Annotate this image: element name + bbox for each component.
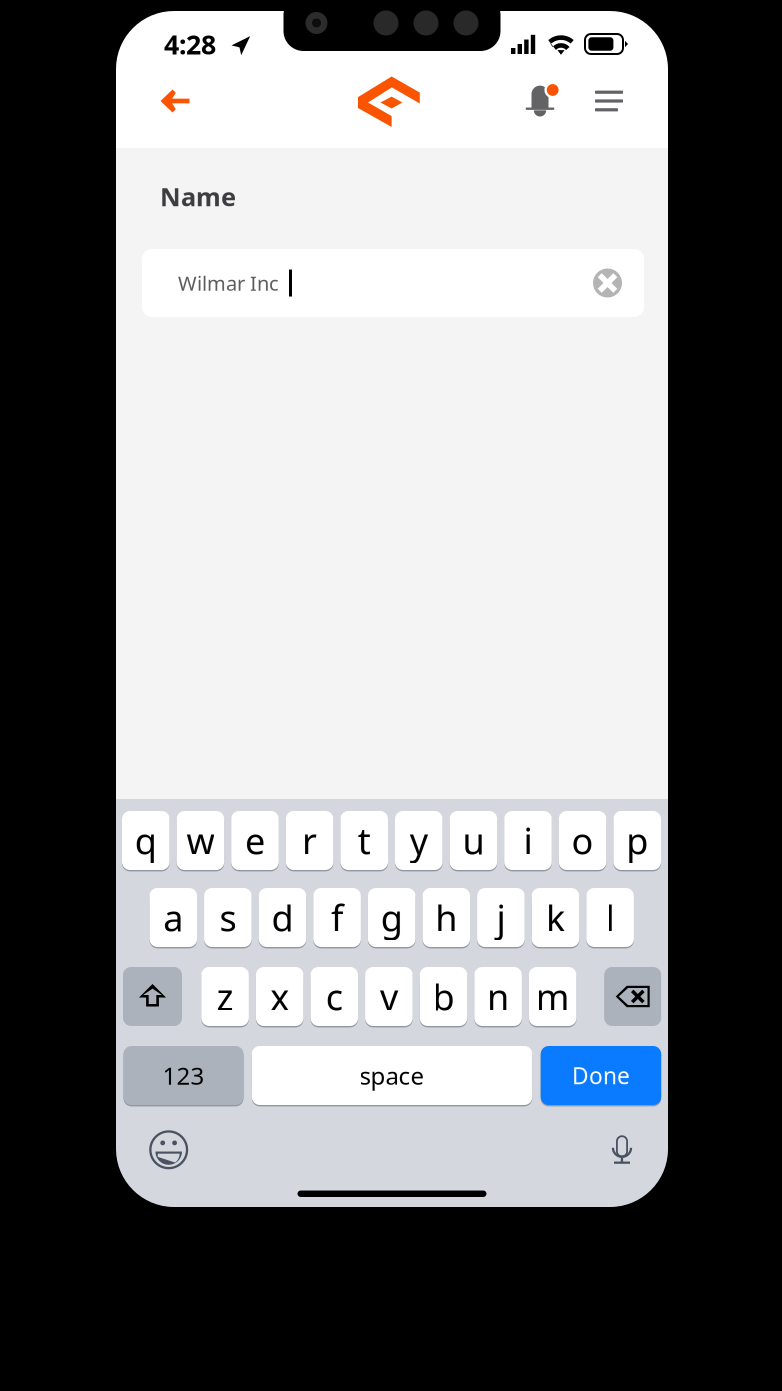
- button[interactable]: n: [474, 967, 522, 1026]
- button[interactable]: b: [420, 967, 467, 1026]
- button[interactable]: s: [204, 888, 252, 947]
- button[interactable]: l: [586, 888, 634, 947]
- staticText: p: [626, 817, 648, 864]
- staticText: 4:28: [164, 26, 216, 62]
- staticText: Wilmar Inc: [178, 270, 279, 296]
- button[interactable]: Back: [149, 77, 201, 125]
- button[interactable]: Clear text: [593, 268, 622, 297]
- button[interactable]: o: [559, 811, 606, 870]
- button[interactable]: v: [365, 967, 413, 1026]
- staticText: f: [331, 894, 343, 941]
- staticText: space: [360, 1060, 425, 1091]
- staticText: t: [358, 817, 371, 864]
- button[interactable]: m: [529, 967, 576, 1026]
- button[interactable]: y: [395, 811, 443, 870]
- staticText: r: [302, 817, 317, 864]
- staticText: w: [186, 817, 214, 864]
- button[interactable]: Notifications: [517, 77, 563, 125]
- staticText: s: [219, 894, 236, 941]
- button[interactable]: c: [310, 967, 358, 1026]
- button[interactable]: f: [313, 888, 361, 947]
- button[interactable]: a: [149, 888, 197, 947]
- button[interactable]: Dictate: [603, 1128, 641, 1172]
- staticText: d: [271, 894, 293, 941]
- staticText: Name: [160, 179, 236, 213]
- button[interactable]: i: [504, 811, 552, 870]
- staticText: x: [270, 973, 289, 1020]
- staticText: g: [381, 894, 403, 941]
- button[interactable]: p: [613, 811, 661, 870]
- button[interactable]: x: [256, 967, 303, 1026]
- staticText: h: [435, 894, 457, 941]
- staticText: q: [135, 817, 157, 864]
- button[interactable]: space: [252, 1046, 532, 1105]
- staticText: i: [523, 817, 532, 864]
- button[interactable]: e: [231, 811, 279, 870]
- staticText: a: [163, 894, 183, 941]
- staticText: z: [217, 973, 234, 1020]
- button[interactable]: t: [340, 811, 388, 870]
- button[interactable]: k: [532, 888, 579, 947]
- button[interactable]: Home: [347, 72, 431, 132]
- staticText: v: [380, 973, 398, 1020]
- button[interactable]: r: [286, 811, 333, 870]
- staticText: j: [496, 894, 505, 941]
- button[interactable]: Emoji: [147, 1128, 191, 1172]
- staticText: e: [245, 817, 265, 864]
- staticText: n: [487, 973, 509, 1020]
- staticText: y: [410, 817, 428, 864]
- button[interactable]: d: [259, 888, 306, 947]
- button[interactable]: q: [122, 811, 170, 870]
- staticText: b: [432, 973, 454, 1020]
- button[interactable]: Shift: [123, 967, 182, 1026]
- button[interactable]: Menu: [587, 77, 631, 125]
- staticText: m: [536, 973, 570, 1020]
- button[interactable]: w: [177, 811, 224, 870]
- staticText: k: [546, 894, 565, 941]
- button[interactable]: j: [477, 888, 525, 947]
- button[interactable]: z: [201, 967, 249, 1026]
- staticText: 123: [162, 1060, 204, 1091]
- button[interactable]: g: [368, 888, 415, 947]
- button[interactable]: Delete: [604, 967, 661, 1026]
- staticText: l: [606, 894, 615, 941]
- button[interactable]: 123: [123, 1046, 243, 1105]
- staticText: c: [326, 973, 343, 1020]
- button[interactable]: u: [450, 811, 497, 870]
- button[interactable]: Done: [541, 1046, 661, 1105]
- staticText: u: [462, 817, 484, 864]
- staticText: o: [572, 817, 594, 864]
- staticText: Done: [572, 1060, 630, 1090]
- button[interactable]: h: [422, 888, 470, 947]
